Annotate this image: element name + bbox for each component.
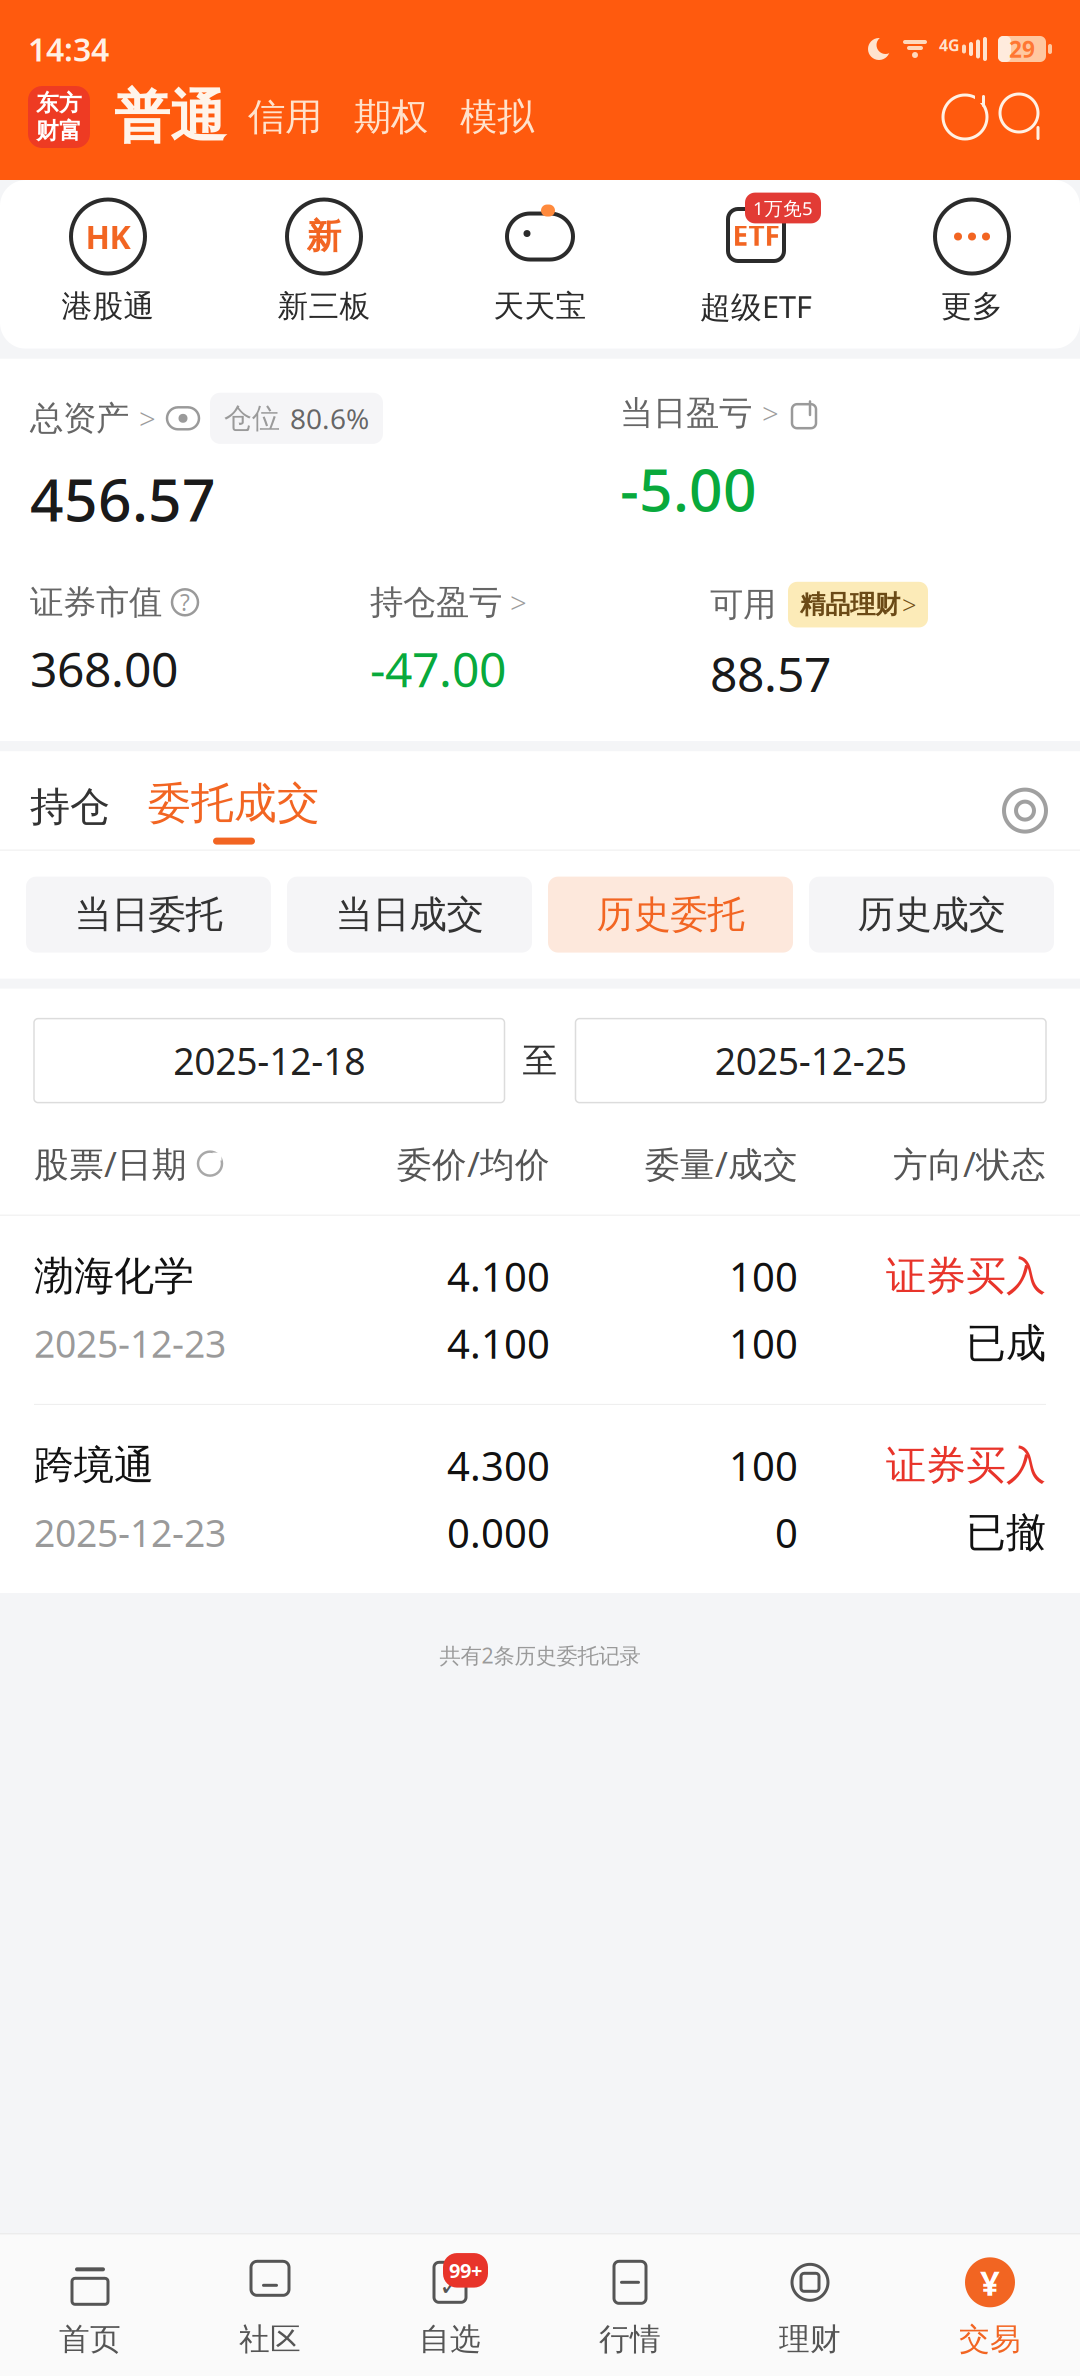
button[interactable]: 2025-12-25 bbox=[575, 1019, 1046, 1103]
button[interactable]: ETF bbox=[648, 198, 864, 327]
button[interactable]: ¥ bbox=[900, 2250, 1080, 2362]
staticText: 普通 bbox=[114, 83, 226, 151]
staticText: 4.300 bbox=[447, 1439, 550, 1492]
button[interactable]: 2025-12-18 bbox=[34, 1019, 504, 1103]
button[interactable]: 刷新 bbox=[936, 88, 994, 146]
button[interactable]: 信用 bbox=[232, 84, 338, 150]
staticText: 可用 bbox=[710, 584, 776, 625]
staticText: 当日成交 bbox=[335, 892, 483, 938]
staticText: 已撤 bbox=[966, 1508, 1046, 1557]
button[interactable]: 期权 bbox=[338, 84, 444, 150]
staticText: 持仓 bbox=[30, 782, 110, 832]
staticText: 港股通 bbox=[61, 287, 154, 325]
button[interactable]: 精品理财 bbox=[788, 582, 928, 627]
staticText: 渤海化学 bbox=[34, 1252, 194, 1301]
button[interactable]: 持仓 bbox=[30, 782, 110, 850]
button[interactable]: 总资产 bbox=[30, 393, 383, 444]
staticText: 证券买入 bbox=[886, 1441, 1046, 1490]
staticText: 信用 bbox=[248, 94, 322, 140]
staticText: > bbox=[762, 394, 779, 433]
staticText: 历史成交 bbox=[857, 892, 1005, 938]
staticText: 0.000 bbox=[447, 1506, 550, 1559]
staticText: > bbox=[510, 583, 527, 622]
button[interactable]: 模拟 bbox=[444, 84, 550, 150]
staticText: 已成 bbox=[966, 1319, 1046, 1368]
staticText: -5.00 bbox=[620, 450, 757, 528]
staticText: 精品理财 bbox=[800, 589, 900, 620]
staticText: 股票/日期 bbox=[34, 1141, 187, 1187]
button[interactable]: 理财 bbox=[720, 2250, 900, 2362]
button[interactable]: 普通 bbox=[90, 83, 232, 151]
staticText: 财富 bbox=[36, 117, 82, 145]
staticText: -47.00 bbox=[370, 637, 506, 700]
staticText: 新 bbox=[306, 215, 341, 258]
button[interactable]: 持仓盈亏 bbox=[370, 582, 527, 623]
staticText: ✓ bbox=[439, 2271, 461, 2301]
staticText: 新三板 bbox=[277, 287, 370, 325]
button[interactable]: 首页 bbox=[0, 2250, 180, 2362]
staticText: 456.57 bbox=[30, 460, 216, 538]
staticText: > bbox=[139, 399, 156, 438]
button[interactable]: 天天宝 bbox=[432, 199, 648, 325]
button[interactable]: ✓ bbox=[360, 2250, 540, 2362]
staticText: 29 bbox=[1009, 34, 1035, 64]
staticText: 88.57 bbox=[710, 641, 831, 705]
button[interactable]: 渤海化学 bbox=[0, 1216, 1080, 1404]
button[interactable]: 更多 bbox=[864, 199, 1080, 325]
staticText: 0 bbox=[775, 1506, 798, 1559]
staticText: 4.100 bbox=[447, 1250, 550, 1303]
staticText: 跨境通 bbox=[34, 1441, 154, 1490]
button[interactable]: 社区 bbox=[180, 2250, 360, 2362]
staticText: 东方 bbox=[36, 89, 82, 117]
staticText: 期权 bbox=[354, 94, 428, 140]
staticText: 理财 bbox=[779, 2320, 841, 2358]
staticText: ¥ bbox=[980, 2259, 1000, 2305]
staticText: 行情 bbox=[599, 2320, 661, 2358]
button[interactable]: 当日委托 bbox=[26, 877, 271, 953]
staticText: 自选 bbox=[419, 2320, 481, 2358]
staticText: 天天宝 bbox=[493, 287, 586, 325]
staticText: 99+ bbox=[449, 2257, 482, 2284]
staticText: 14:34 bbox=[28, 28, 109, 70]
staticText: > bbox=[902, 588, 916, 621]
button[interactable]: 当日盈亏 bbox=[620, 393, 819, 434]
button[interactable]: 当日成交 bbox=[287, 877, 532, 953]
staticText: 社区 bbox=[239, 2320, 301, 2358]
button[interactable]: 行情 bbox=[540, 2250, 720, 2362]
staticText: 100 bbox=[729, 1439, 798, 1492]
staticText: 更多 bbox=[941, 287, 1003, 325]
staticText: 方向/状态 bbox=[893, 1141, 1046, 1187]
staticText: 模拟 bbox=[460, 94, 534, 140]
button[interactable]: 搜索 bbox=[994, 88, 1052, 146]
staticText: 委量/成交 bbox=[645, 1141, 798, 1187]
staticText: 委价/均价 bbox=[397, 1141, 550, 1187]
staticText: 80.6% bbox=[290, 400, 369, 437]
button[interactable]: 委托成交 bbox=[110, 777, 320, 850]
staticText: 100 bbox=[729, 1317, 798, 1370]
staticText: 2025-12-25 bbox=[715, 1036, 907, 1085]
button[interactable]: 跨境通 bbox=[0, 1405, 1080, 1593]
staticText: 至 bbox=[522, 1039, 557, 1082]
staticText: 交易 bbox=[959, 2320, 1021, 2358]
staticText: 历史委托 bbox=[596, 892, 744, 938]
staticText: 共有2条历史委托记录 bbox=[439, 1641, 640, 1669]
button[interactable]: 历史成交 bbox=[809, 877, 1054, 953]
staticText: 368.00 bbox=[30, 637, 178, 700]
staticText: 当日盈亏 bbox=[620, 393, 752, 434]
staticText: 4G bbox=[939, 34, 960, 56]
staticText: 首页 bbox=[59, 2320, 121, 2358]
staticText: 证券市值 bbox=[30, 582, 162, 623]
button[interactable]: 新 bbox=[216, 199, 432, 325]
staticText: ? bbox=[180, 587, 190, 617]
staticText: 当日委托 bbox=[74, 892, 222, 938]
staticText: 4.100 bbox=[447, 1317, 550, 1370]
button[interactable]: HK bbox=[0, 199, 216, 325]
staticText: 2025-12-18 bbox=[173, 1036, 365, 1085]
staticText: 100 bbox=[729, 1250, 798, 1303]
staticText: HK bbox=[85, 215, 130, 258]
button[interactable]: 设置 bbox=[1000, 786, 1050, 850]
staticText: 委托成交 bbox=[148, 777, 320, 830]
staticText: 超级ETF bbox=[700, 286, 812, 327]
staticText: 证券买入 bbox=[886, 1252, 1046, 1301]
button[interactable]: 历史委托 bbox=[548, 877, 793, 953]
